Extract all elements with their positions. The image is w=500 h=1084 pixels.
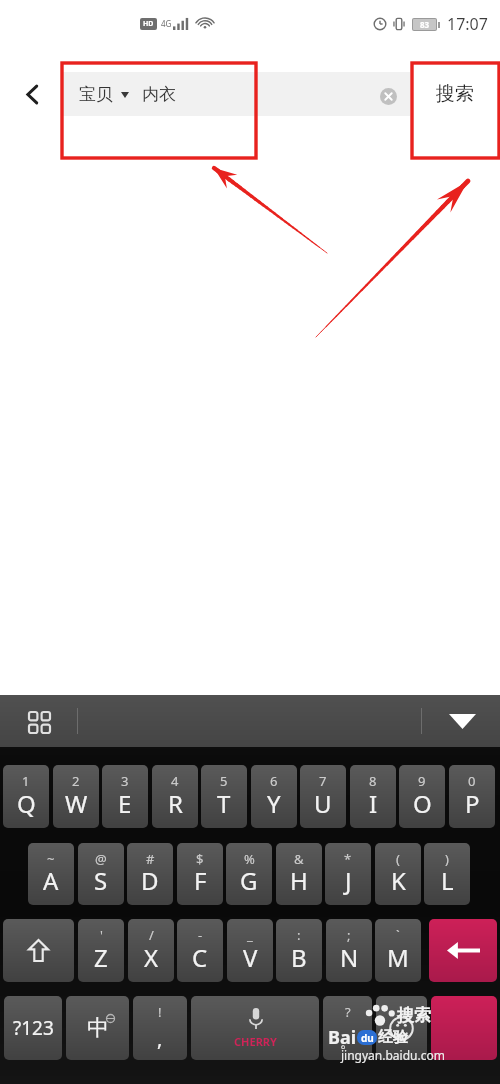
button[interactable]: $ (177, 843, 223, 905)
staticText: * (344, 850, 352, 868)
staticText: 内衣 (142, 84, 176, 105)
button[interactable]: 5 (201, 765, 247, 828)
staticText: ' (100, 926, 103, 944)
staticText: F (194, 864, 207, 897)
staticText: 4 (171, 772, 179, 790)
staticText: 。 (340, 1033, 355, 1052)
button[interactable]: Space (191, 996, 319, 1060)
staticText: M (387, 941, 409, 974)
staticText: 中 (87, 1014, 109, 1042)
staticText: ) (445, 850, 449, 868)
button[interactable]: ! (133, 996, 187, 1060)
staticText: ; (347, 926, 351, 944)
button[interactable]: Clear text (373, 81, 403, 111)
button[interactable]: _ (227, 919, 273, 982)
button[interactable]: @ (78, 843, 124, 905)
staticText: @ (95, 850, 107, 868)
button[interactable]: Keyboard layout (25, 708, 53, 736)
button[interactable]: ` (375, 919, 421, 982)
staticText: X (144, 941, 159, 974)
staticText: ? (345, 1003, 351, 1021)
button[interactable]: Shift (3, 919, 74, 982)
button[interactable]: Enter (431, 996, 497, 1060)
button[interactable]: Hide keyboard (443, 706, 481, 736)
staticText: CHERRY (234, 1034, 277, 1049)
button[interactable]: ( (375, 843, 421, 905)
button[interactable]: % (226, 843, 272, 905)
button[interactable]: 3 (102, 765, 148, 828)
staticText: : (297, 926, 301, 944)
button[interactable]: 4 (152, 765, 198, 828)
staticText: N (340, 941, 359, 974)
staticText: ?123 (13, 1015, 54, 1041)
staticText: T (217, 787, 231, 820)
button[interactable]: : (276, 919, 322, 982)
button[interactable]: ' (78, 919, 124, 982)
button[interactable]: ) (424, 843, 470, 905)
staticText: 1 (22, 772, 30, 790)
staticText: 5 (220, 772, 228, 790)
staticText: 83 (420, 19, 430, 30)
staticText: - (198, 926, 203, 944)
staticText: O (413, 787, 432, 820)
button[interactable]: 9 (399, 765, 445, 828)
button[interactable]: Back (8, 70, 56, 118)
staticText: P (465, 787, 480, 820)
staticText: / (149, 926, 154, 944)
button[interactable]: ~ (28, 843, 74, 905)
button[interactable]: 宝贝 (62, 72, 410, 116)
button[interactable]: Backspace (429, 919, 497, 982)
staticText: R (168, 787, 183, 820)
staticText: Y (267, 787, 281, 820)
button[interactable]: Emoji (376, 996, 427, 1060)
button[interactable]: 0 (449, 765, 495, 828)
staticText: 4G (161, 18, 172, 29)
staticText: ! (158, 1003, 162, 1021)
staticText: 搜索 (436, 82, 474, 106)
staticText: du (361, 1031, 374, 1045)
button[interactable]: ; (326, 919, 372, 982)
button[interactable]: Keyboard layout (0, 695, 500, 747)
staticText: 7 (319, 772, 327, 790)
staticText: 搜索 (397, 1005, 431, 1026)
staticText: ~ (47, 850, 55, 868)
staticText: E (118, 787, 132, 820)
staticText: 2 (72, 772, 80, 790)
button[interactable]: 8 (350, 765, 396, 828)
staticText: C (192, 941, 208, 974)
staticText: ( (396, 850, 400, 868)
staticText: K (391, 864, 406, 897)
staticText: _ (247, 926, 253, 944)
button[interactable]: - (177, 919, 223, 982)
staticText: U (314, 787, 332, 820)
button[interactable]: 搜索 (418, 72, 492, 116)
staticText: jingyan.baidu.com (341, 1047, 445, 1063)
staticText: S (94, 864, 108, 897)
button[interactable]: # (127, 843, 173, 905)
button[interactable]: ?123 (4, 996, 62, 1060)
staticText: 3 (121, 772, 129, 790)
staticText: 0 (468, 772, 476, 790)
staticText: Q (17, 787, 36, 820)
button[interactable]: 中 (66, 996, 129, 1060)
button[interactable]: 6 (251, 765, 297, 828)
staticText: Z (94, 941, 108, 974)
staticText: 17:07 (447, 13, 488, 35)
button[interactable]: * (325, 843, 371, 905)
staticText: B (291, 941, 307, 974)
button[interactable]: ? (323, 996, 372, 1060)
button[interactable]: & (276, 843, 322, 905)
button[interactable]: 7 (300, 765, 346, 828)
staticText: J (345, 864, 352, 897)
staticText: HD (143, 19, 154, 29)
button[interactable]: 1 (3, 765, 49, 828)
button[interactable]: 2 (53, 765, 99, 828)
staticText: ` (396, 926, 400, 944)
staticText: V (243, 941, 258, 974)
staticText: Bai (328, 1025, 357, 1050)
staticText: 9 (418, 772, 426, 790)
button[interactable]: / (128, 919, 174, 982)
staticText: 6 (270, 772, 278, 790)
staticText: 8 (369, 772, 377, 790)
staticText: $ (196, 850, 204, 868)
